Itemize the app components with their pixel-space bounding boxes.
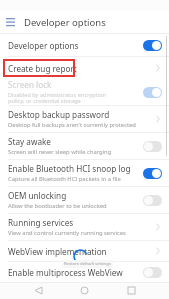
staticText: Developer options: [24, 16, 106, 29]
button[interactable]: Back: [30, 282, 47, 299]
staticText: OEM unlocking: [8, 190, 67, 201]
staticText: Stay awake: [8, 136, 51, 147]
staticText: Allow the bootloader to be unlocked: [8, 202, 107, 210]
staticText: Desktop full backups aren't currently pr…: [8, 121, 136, 129]
staticText: Screen lock: [8, 79, 52, 90]
staticText: Disabled by administrator, encryption po…: [8, 91, 121, 105]
button[interactable]: Home: [76, 282, 93, 299]
button[interactable]: Off: [143, 267, 162, 278]
staticText: Enable multiprocess WebView: [8, 267, 123, 278]
button[interactable]: OEM unlocking: [0, 187, 169, 213]
staticText: Developer options: [8, 40, 79, 51]
button[interactable]: Menu: [0, 12, 20, 32]
button[interactable]: On: [143, 168, 162, 179]
staticText: Screen will never sleep while charging: [8, 148, 112, 156]
staticText: Capture all Bluetooth HCI packets in a f…: [8, 175, 121, 183]
button[interactable]: Enable Bluetooth HCI snoop log: [0, 160, 169, 186]
staticText: WebView implementation: [8, 246, 107, 257]
button[interactable]: Stay awake: [0, 133, 169, 159]
button[interactable]: On: [143, 87, 162, 98]
button[interactable]: WebView implementation: [0, 241, 169, 261]
button[interactable]: Recents: [123, 282, 140, 299]
staticText: Restore default settings: [64, 261, 111, 267]
staticText: Create bug report: [8, 63, 77, 74]
button[interactable]: Enable multiprocess WebView: [0, 262, 169, 282]
staticText: Running services: [8, 217, 74, 228]
button[interactable]: Running services: [0, 214, 169, 240]
button[interactable]: Create bug report: [0, 57, 169, 79]
staticText: Enable Bluetooth HCI snoop log: [8, 163, 131, 174]
button[interactable]: Off: [143, 195, 162, 206]
button[interactable]: Desktop backup password: [0, 106, 169, 132]
staticText: View and control currently running servi…: [8, 229, 126, 237]
button[interactable]: Developer options: [0, 34, 169, 56]
button[interactable]: Screen lock: [0, 79, 169, 105]
button[interactable]: Off: [143, 141, 162, 152]
staticText: Desktop backup password: [8, 109, 110, 120]
button[interactable]: On: [143, 40, 162, 51]
